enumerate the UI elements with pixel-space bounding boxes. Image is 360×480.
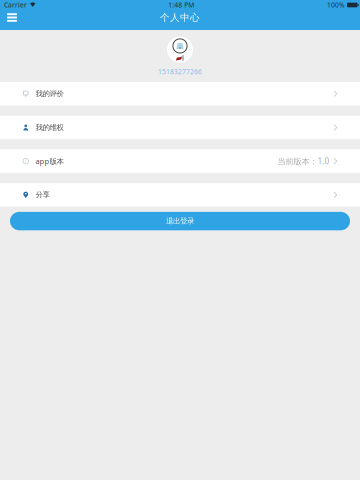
staticText: 分享 xyxy=(35,190,49,199)
staticText: 当前版本：1.0 xyxy=(278,155,330,167)
button[interactable]: Menu xyxy=(3,10,20,25)
button[interactable]: 分享 xyxy=(0,183,360,207)
button[interactable]: 我的评价 xyxy=(0,82,360,105)
staticText: 15183277266 xyxy=(158,67,202,76)
button[interactable]: app版本 xyxy=(0,149,360,173)
staticText: 我的评价 xyxy=(35,89,63,98)
staticText: app版本 xyxy=(35,156,63,166)
button[interactable]: 退出登录 xyxy=(10,212,350,230)
staticText: 退出登录 xyxy=(166,216,194,226)
staticText: 我的维权 xyxy=(35,123,63,132)
staticText: 1:48 PM xyxy=(168,0,194,10)
staticText: Carrier xyxy=(4,0,27,10)
button[interactable]: 我的维权 xyxy=(0,116,360,139)
staticText: 个人中心 xyxy=(160,11,200,24)
staticText: 100% xyxy=(327,0,345,10)
